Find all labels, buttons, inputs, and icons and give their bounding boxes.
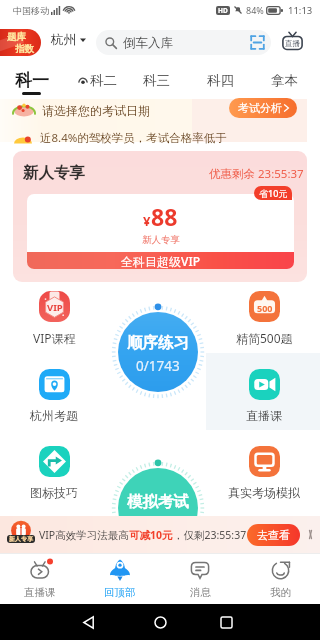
staticText: HD <box>218 6 228 15</box>
staticText: 杭州 <box>51 32 76 48</box>
staticText: 省10元 <box>259 187 288 199</box>
button[interactable]: 拿本 <box>271 72 298 89</box>
staticText: 回顶部 <box>104 586 136 599</box>
staticText: 全科目超级VIP <box>121 253 200 269</box>
button[interactable]: 消息 <box>160 553 240 604</box>
staticText: 直播 <box>285 39 300 48</box>
staticText: 指数 <box>15 43 34 55</box>
button[interactable]: 去查看 <box>247 524 300 546</box>
staticText: 精简500题 <box>236 330 293 346</box>
button[interactable]: 回顶部 <box>80 553 160 604</box>
button[interactable]: 科四 <box>207 72 234 89</box>
button[interactable]: 真实考场模拟 <box>219 446 309 516</box>
button[interactable]: Home <box>145 604 175 640</box>
button[interactable]: 顺序练习 <box>111 305 205 399</box>
staticText: 中国移动 <box>13 5 49 16</box>
staticText: 0/1743 <box>136 357 180 375</box>
button[interactable]: 杭州考题 <box>9 369 99 439</box>
button[interactable]: Recents <box>211 604 241 640</box>
staticText: 近8.4%的驾校学员，考试合格率低于 <box>40 130 227 146</box>
button[interactable]: 我的 <box>240 553 320 604</box>
staticText: 请选择您的考试日期 <box>42 103 150 118</box>
staticText: 题库 <box>7 31 26 43</box>
staticText: 顺序练习 <box>127 333 189 353</box>
staticText: VIP高效学习法最高 <box>39 528 129 542</box>
staticText: VIP课程 <box>33 330 76 346</box>
staticText: 科三 <box>143 72 170 89</box>
staticText: 优惠剩余 23:55:37 <box>209 166 304 182</box>
button[interactable]: 题库 <box>0 29 41 56</box>
staticText: 11:13 <box>288 4 313 17</box>
button[interactable]: 500 <box>219 291 309 361</box>
button[interactable]: 科三 <box>143 72 170 89</box>
staticText: 模拟考试 <box>127 492 189 512</box>
staticText: 图标技巧 <box>30 485 78 500</box>
staticText: 88 <box>151 201 178 232</box>
staticText: ¥ <box>143 212 151 230</box>
staticText: 直播课 <box>24 586 56 599</box>
button[interactable]: Live <box>282 32 303 50</box>
staticText: 新人专享 <box>142 234 180 246</box>
staticText: 直播课 <box>246 408 282 423</box>
staticText: 考试分析 <box>238 101 282 115</box>
button[interactable]: 图标技巧 <box>9 446 99 516</box>
button[interactable]: 直播课 <box>219 369 309 439</box>
staticText: 可减10元 <box>129 528 173 542</box>
button[interactable]: 直播课 <box>0 553 80 604</box>
button[interactable]: Back <box>73 604 103 640</box>
staticText: 科四 <box>207 72 234 89</box>
button[interactable]: Scan <box>250 35 265 50</box>
button[interactable]: 模拟考试 <box>111 461 205 555</box>
button[interactable]: 请选择您的考试日期 <box>13 100 308 121</box>
staticText: 新人专享 <box>9 535 33 543</box>
button[interactable]: 杭州 <box>51 20 86 60</box>
button[interactable]: VIP <box>9 291 99 361</box>
staticText: ，仅剩23:55:37 <box>173 528 247 542</box>
staticText: 科二 <box>90 72 117 89</box>
staticText: 倒车入库 <box>123 35 173 51</box>
staticText: 拿本 <box>271 72 298 89</box>
staticText: 杭州考题 <box>30 408 78 423</box>
staticText: 科一 <box>15 70 49 91</box>
staticText: 去查看 <box>257 528 290 542</box>
button[interactable]: 倒车入库 <box>105 30 265 55</box>
staticText: 84% <box>246 4 264 16</box>
staticText: 新人专享 <box>23 163 85 183</box>
button[interactable]: ¥ <box>27 194 294 269</box>
button[interactable]: 考试分析 <box>229 98 297 118</box>
staticText: 我的 <box>270 586 291 599</box>
staticText: 500 <box>257 302 273 314</box>
staticText: 消息 <box>190 586 211 599</box>
staticText: VIP <box>47 301 63 314</box>
button[interactable]: 科二 <box>78 72 117 89</box>
button[interactable]: Close <box>307 528 314 541</box>
button[interactable]: 科一 <box>15 70 49 91</box>
staticText: 真实考场模拟 <box>228 485 300 500</box>
